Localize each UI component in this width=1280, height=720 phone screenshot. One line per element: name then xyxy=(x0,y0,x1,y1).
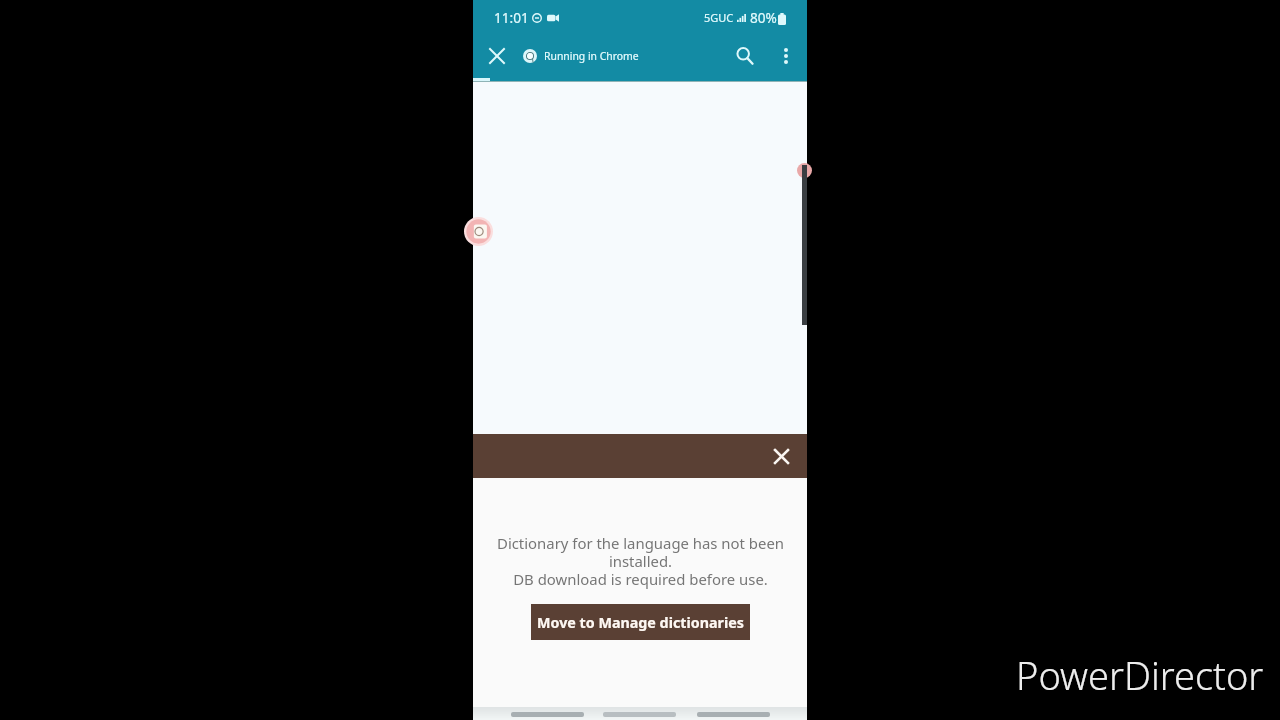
button[interactable]: Recents xyxy=(511,712,584,717)
staticText: Move to Manage dictionaries xyxy=(537,613,744,632)
staticText: PowerDirector xyxy=(1016,649,1264,701)
staticText: Running in Chrome xyxy=(544,49,639,63)
button[interactable]: More options xyxy=(771,41,801,71)
button[interactable]: Close xyxy=(482,41,512,71)
button[interactable]: Search xyxy=(728,39,762,73)
button[interactable]: Close ad xyxy=(766,441,796,471)
staticText: Dictionary for the language has not been… xyxy=(497,533,784,590)
staticText: 80% xyxy=(750,8,777,27)
button[interactable]: Home xyxy=(603,712,676,717)
staticText: 11:01 xyxy=(494,8,529,27)
button[interactable]: Back xyxy=(697,712,770,717)
button[interactable]: Move to Manage dictionaries xyxy=(531,604,750,640)
staticText: 5GUC xyxy=(704,10,734,25)
